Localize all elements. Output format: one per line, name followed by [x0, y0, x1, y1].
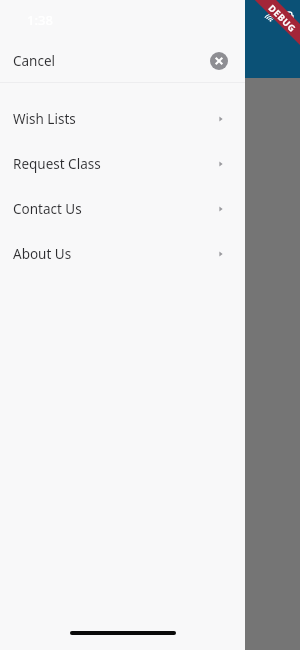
button[interactable]: Wish Lists	[0, 96, 245, 141]
button[interactable]: About Us	[0, 231, 245, 276]
button[interactable]: Contact Us	[0, 186, 245, 231]
staticText: Request Class	[13, 155, 101, 173]
button[interactable]: Close	[208, 50, 230, 72]
staticText: Cancel	[13, 52, 56, 70]
staticText: Wish Lists	[13, 110, 76, 128]
staticText: Contact Us	[13, 200, 82, 218]
button[interactable]: Request Class	[0, 141, 245, 186]
button[interactable]: Cancel	[0, 40, 245, 82]
staticText: DEBUG	[266, 2, 299, 34]
staticText: About Us	[13, 245, 72, 263]
